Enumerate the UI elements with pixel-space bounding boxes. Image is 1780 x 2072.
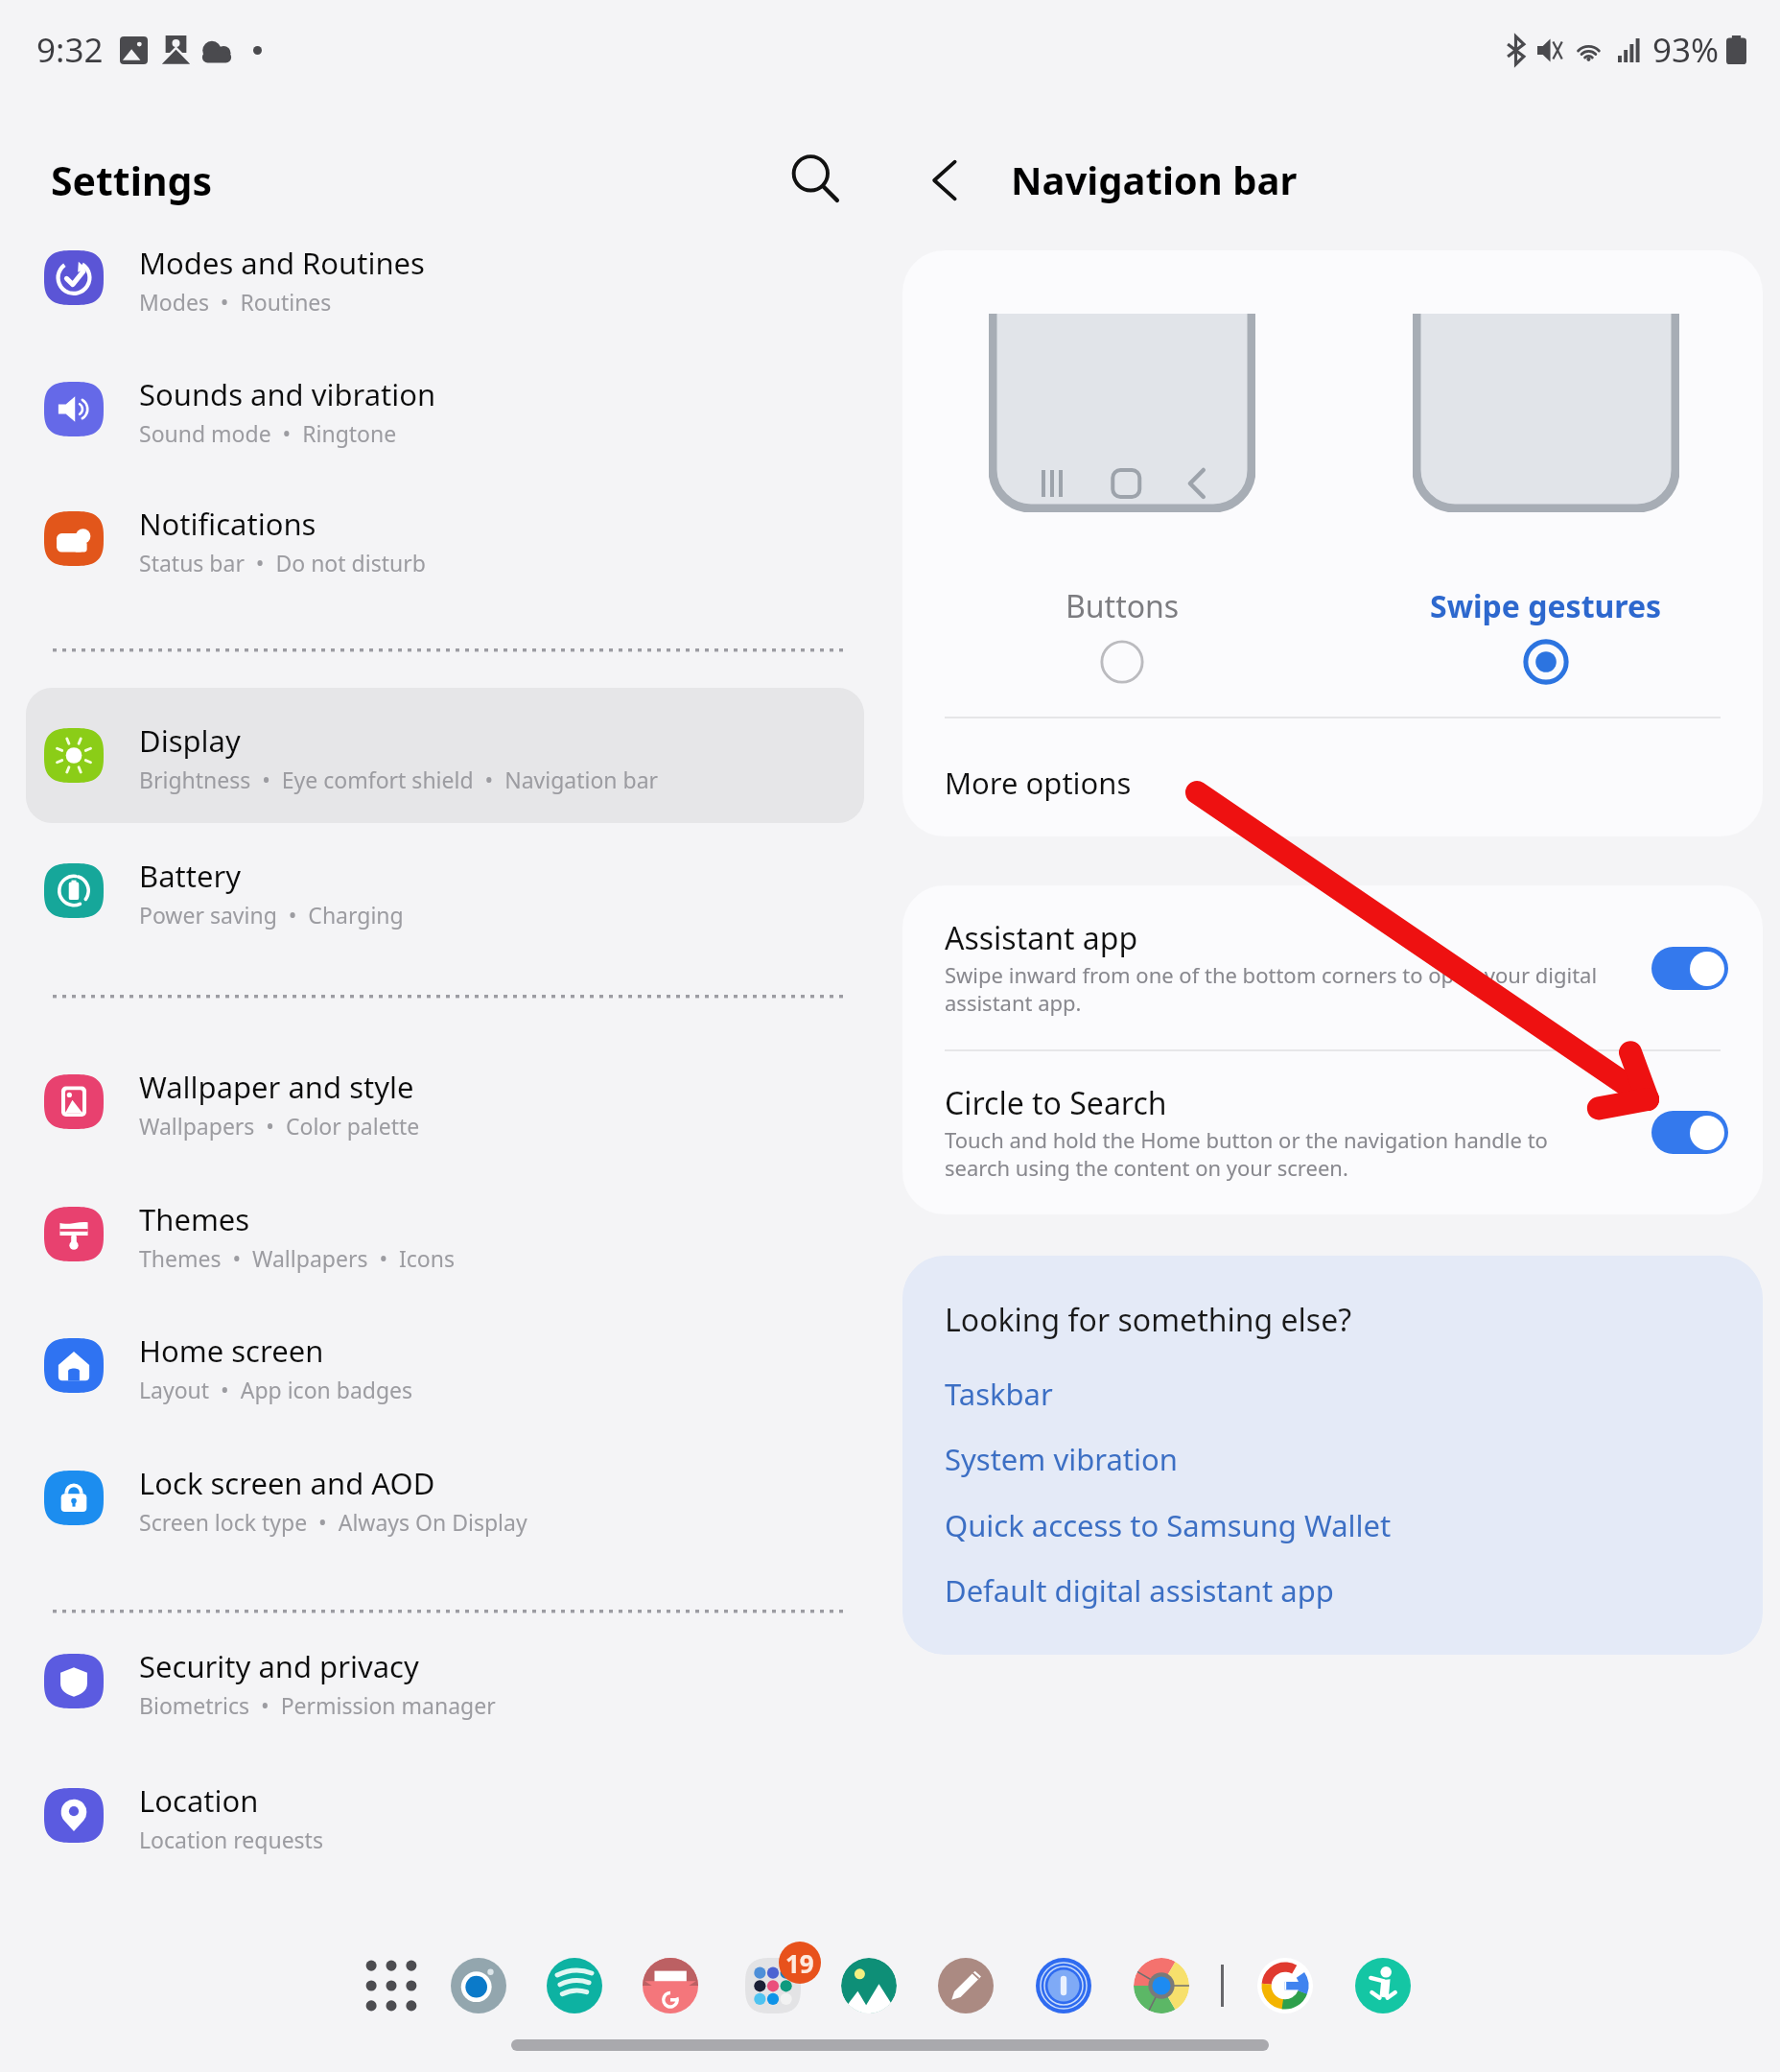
button[interactable]: Wallpaper and style [26, 1034, 864, 1169]
staticText: Lock screen and AOD [139, 1463, 435, 1503]
staticText: Layout • App icon badges [139, 1375, 413, 1404]
staticText: 19 [785, 1946, 814, 1980]
staticText: Sound mode • Ringtone [139, 418, 397, 448]
button[interactable]: System vibration [945, 1439, 1178, 1479]
button[interactable]: Gmail [627, 1942, 714, 2029]
button[interactable]: Back [907, 142, 984, 219]
button[interactable]: Chrome [1118, 1942, 1205, 2029]
button[interactable]: More options [902, 718, 1763, 836]
staticText: Navigation bar [1011, 153, 1298, 205]
button[interactable]: Camera [435, 1942, 522, 2029]
button[interactable]: All apps [348, 1942, 434, 2029]
staticText: Security and privacy [139, 1646, 419, 1686]
staticText: Modes and Routines [139, 243, 425, 283]
staticText: Buttons [1066, 585, 1180, 627]
button[interactable]: Fitness [1340, 1942, 1426, 2029]
staticText: 9:32 [36, 27, 104, 73]
button[interactable]: Battery [26, 823, 864, 958]
staticText: Circle to Search [945, 1082, 1167, 1124]
button[interactable]: Display [26, 688, 864, 823]
staticText: Swipe inward from one of the bottom corn… [945, 960, 1598, 1017]
button[interactable]: Search [779, 142, 852, 215]
staticText: Display [139, 720, 241, 761]
staticText: Settings [51, 153, 213, 207]
staticText: Location requests [139, 1825, 323, 1854]
button[interactable]: Toggle [1651, 1111, 1728, 1154]
staticText: Sounds and vibration [139, 374, 436, 414]
staticText: Notifications [139, 504, 316, 544]
button[interactable]: Quick access to Samsung Wallet [945, 1505, 1392, 1545]
button[interactable]: Google [1242, 1942, 1328, 2029]
button[interactable]: Home screen [26, 1298, 864, 1433]
staticText: Touch and hold the Home button or the na… [945, 1125, 1548, 1182]
button[interactable]: 1Password [1020, 1942, 1107, 2029]
staticText: Biometrics • Permission manager [139, 1690, 496, 1720]
button[interactable]: Security and privacy [26, 1613, 864, 1749]
button[interactable]: Themes [26, 1166, 864, 1302]
button[interactable]: Location [26, 1748, 864, 1883]
staticText: Modes • Routines [139, 287, 332, 317]
staticText: Brightness • Eye comfort shield • Naviga… [139, 765, 659, 794]
staticText: Wallpapers • Color palette [139, 1111, 420, 1141]
staticText: Wallpaper and style [139, 1067, 414, 1107]
button[interactable]: Notifications [26, 471, 864, 606]
staticText: Looking for something else? [945, 1299, 1352, 1341]
staticText: Swipe gestures [1430, 585, 1662, 627]
staticText: Location [139, 1780, 259, 1821]
staticText: Screen lock type • Always On Display [139, 1507, 527, 1537]
button[interactable]: App folder [730, 1942, 816, 2029]
staticText: Battery [139, 856, 242, 896]
staticText: 93% [1652, 27, 1720, 73]
button[interactable]: Taskbar [945, 1374, 1053, 1414]
staticText: Status bar • Do not disturb [139, 548, 426, 577]
button[interactable]: Assistant app [902, 885, 1763, 1050]
staticText: More options [945, 763, 1132, 803]
button[interactable]: Lock screen and AOD [26, 1430, 864, 1566]
staticText: Assistant app [945, 917, 1138, 959]
button[interactable]: Modes and Routines [26, 210, 864, 345]
staticText: Themes • Wallpapers • Icons [139, 1243, 455, 1273]
button[interactable]: Gallery [826, 1942, 912, 2029]
button[interactable]: Sounds and vibration [26, 341, 864, 477]
button[interactable]: Default digital assistant app [945, 1570, 1334, 1611]
button[interactable]: Toggle [1651, 947, 1728, 990]
staticText: Power saving • Charging [139, 900, 404, 930]
button[interactable]: Buttons [989, 314, 1255, 685]
button[interactable]: Spotify [531, 1942, 618, 2029]
button[interactable]: Circle to Search [902, 1050, 1763, 1214]
staticText: Home screen [139, 1330, 324, 1371]
staticText: Themes [139, 1199, 250, 1239]
button[interactable]: Notes [923, 1942, 1009, 2029]
button[interactable]: Swipe gestures [1413, 314, 1679, 685]
